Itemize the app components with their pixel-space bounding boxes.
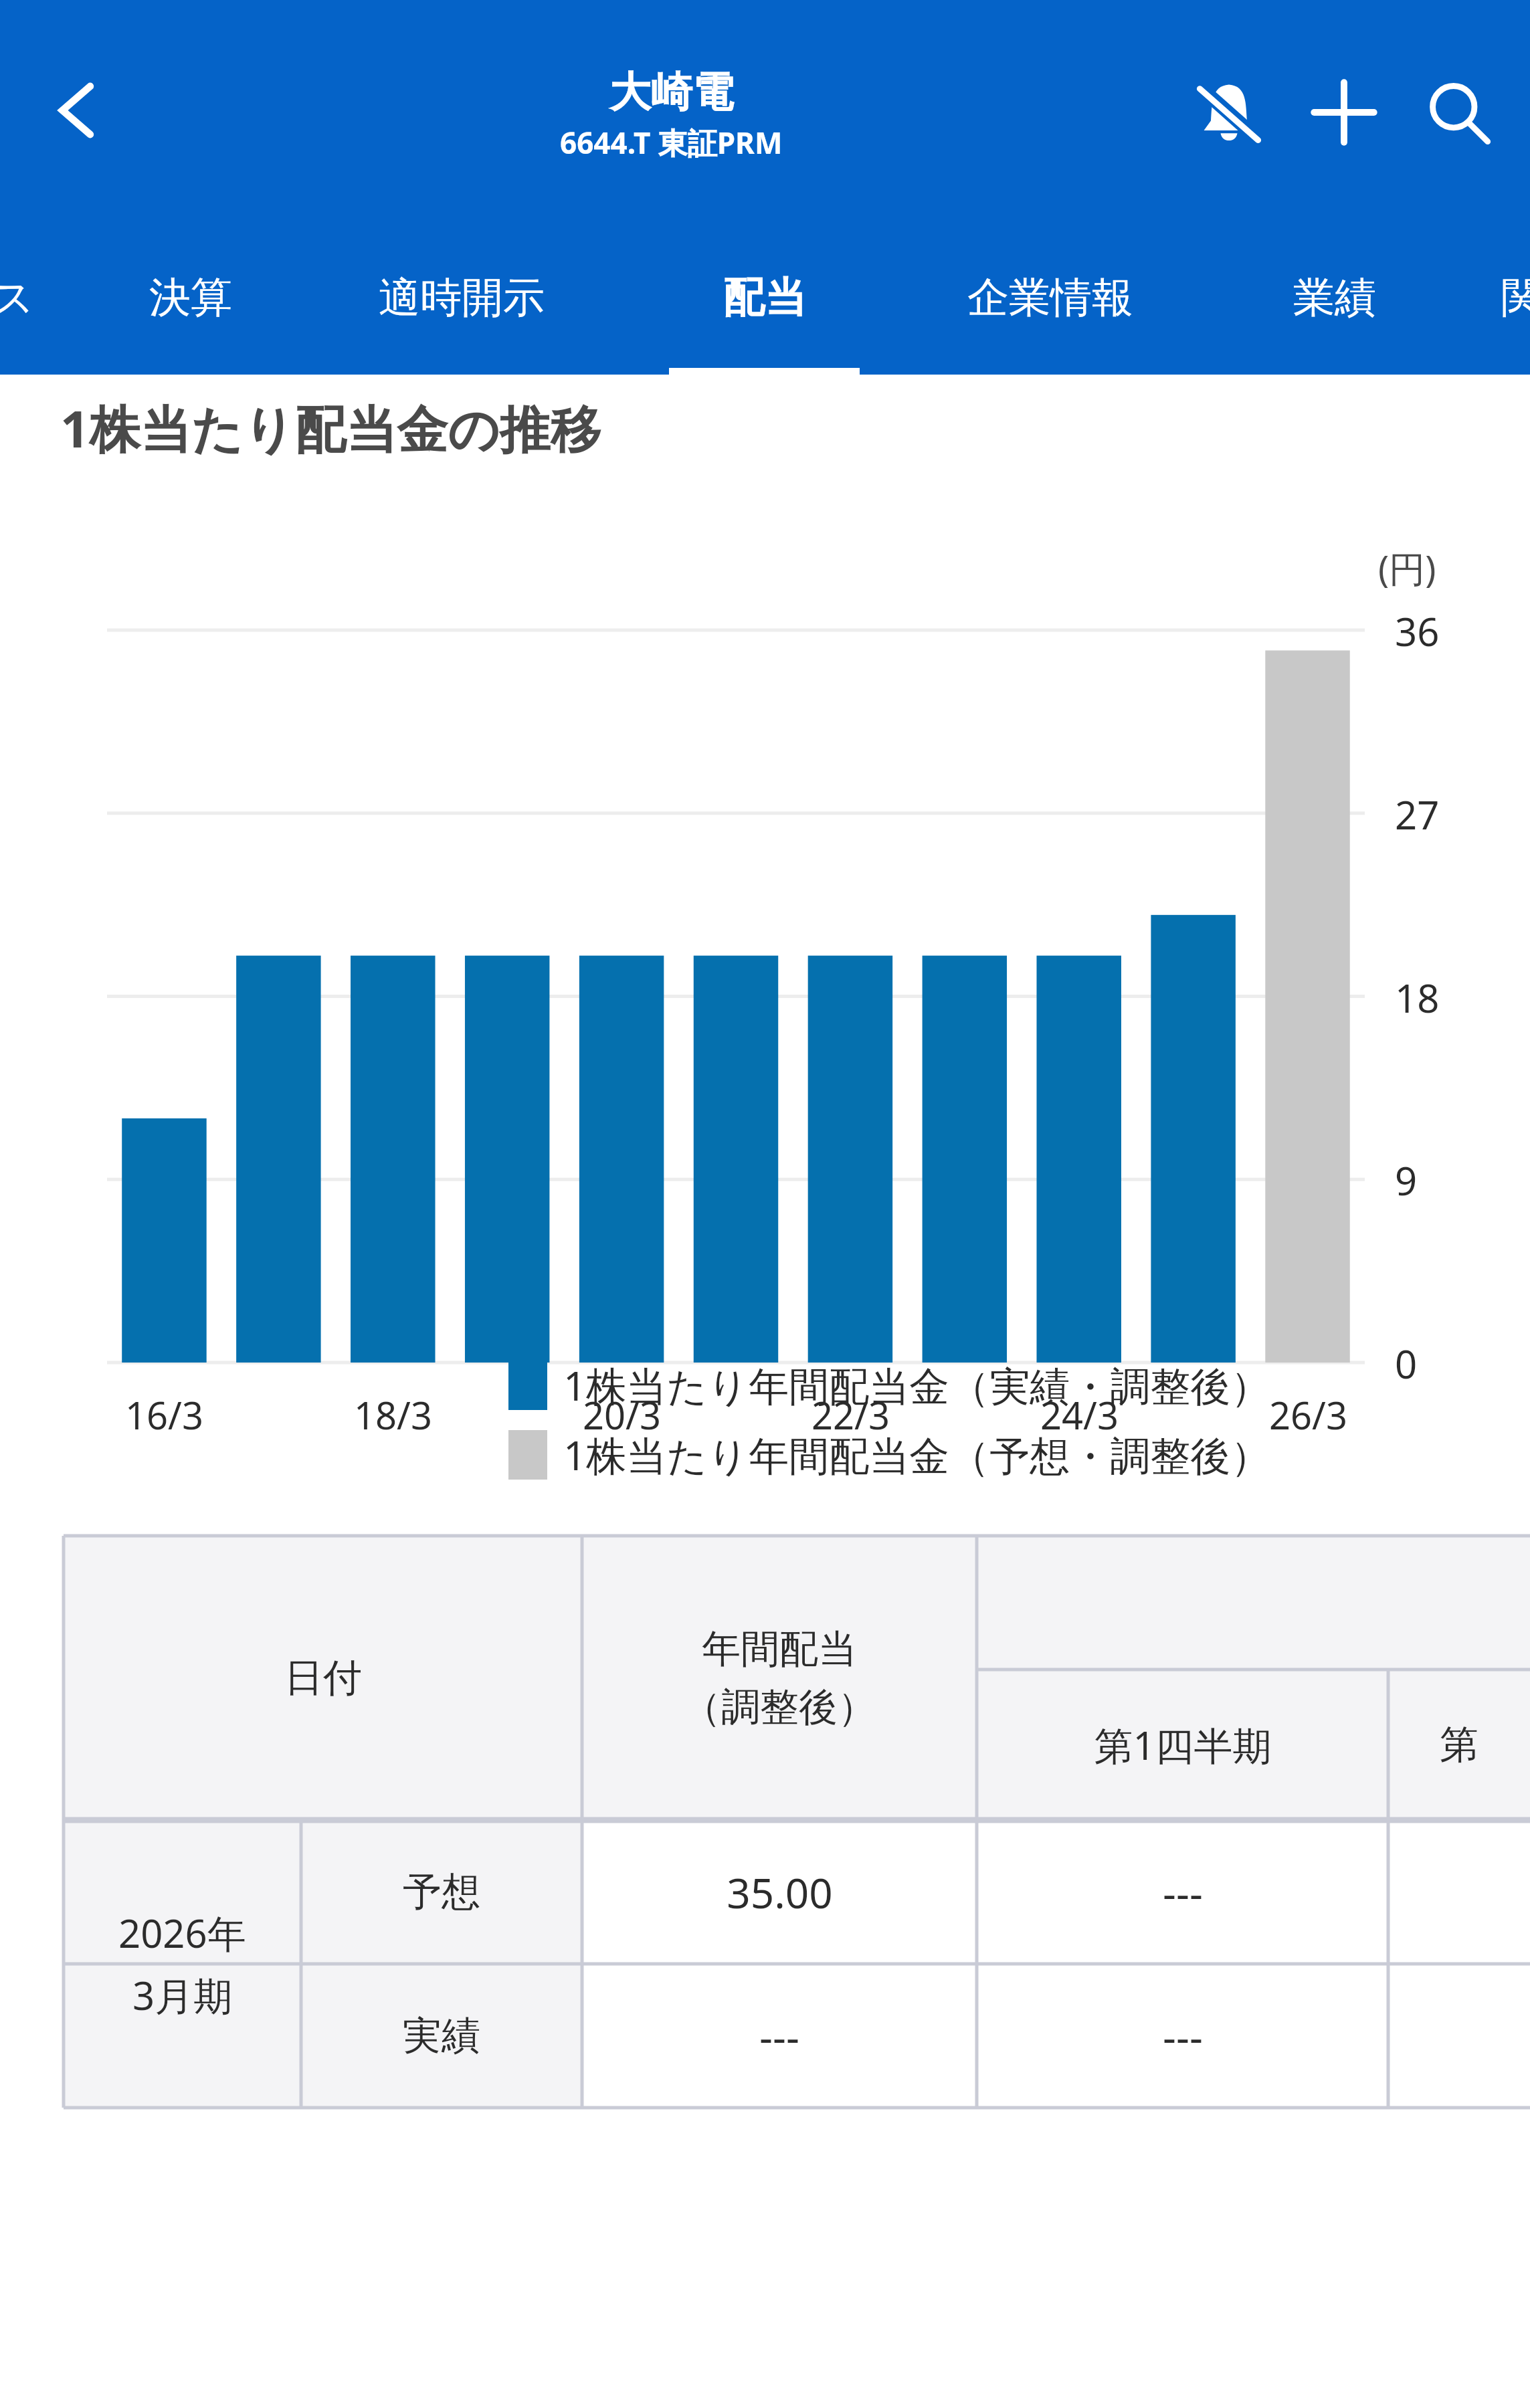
staticText: 実績 — [403, 2011, 480, 2060]
button[interactable]: 実績 — [301, 1964, 582, 2108]
staticText: 26/3 — [1269, 1389, 1347, 1440]
staticText: 20/3 — [583, 1389, 661, 1440]
staticText: (円) — [1378, 543, 1436, 593]
staticText: 適時開示 — [379, 272, 545, 324]
button[interactable]: 適時開示 — [328, 221, 595, 375]
staticText: 決算 — [149, 272, 232, 324]
button[interactable]: 年間配当 — [582, 1536, 977, 1820]
button[interactable]: 35.00 — [582, 1820, 977, 1964]
staticText: 配当 — [723, 272, 806, 324]
staticText: 35.00 — [727, 1864, 833, 1920]
staticText: 関 — [1501, 272, 1530, 324]
staticText: 第1四半期 — [1094, 1718, 1272, 1771]
staticText: 1株当たり年間配当金（実績・調整後） — [563, 1358, 1271, 1413]
button[interactable]: 関 — [1482, 221, 1530, 375]
button[interactable]: --- — [582, 1964, 977, 2108]
staticText: （調整後） — [682, 1683, 876, 1732]
staticText: --- — [1163, 1864, 1203, 1920]
staticText: 9 — [1395, 1154, 1418, 1207]
button[interactable]: 第 — [1388, 1670, 1530, 1820]
staticText: 24/3 — [1040, 1389, 1119, 1440]
button[interactable]: Notifications off — [1175, 59, 1282, 166]
staticText: 日付 — [284, 1653, 362, 1702]
button[interactable]: Add — [1290, 59, 1398, 166]
button[interactable]: 予想 — [301, 1820, 582, 1964]
button[interactable]: 業績 — [1258, 221, 1412, 375]
button[interactable]: ス — [0, 221, 54, 375]
staticText: 1株当たり年間配当金（予想・調整後） — [563, 1427, 1271, 1482]
button[interactable]: --- — [977, 1964, 1388, 2108]
staticText: 大崎電 — [609, 66, 734, 118]
button[interactable]: --- — [977, 1820, 1388, 1964]
staticText: 年間配当 — [702, 1625, 857, 1674]
staticText: 22/3 — [811, 1389, 890, 1440]
button[interactable]: Back — [20, 54, 134, 167]
staticText: 18/3 — [354, 1389, 432, 1440]
staticText: 企業情報 — [967, 272, 1133, 324]
button[interactable]: 第1四半期 — [977, 1670, 1388, 1820]
button[interactable]: 配当 — [669, 221, 860, 375]
staticText: 6644.T 東証PRM — [560, 122, 783, 163]
staticText: 1株当たり配当金の推移 — [60, 393, 601, 463]
staticText: 16/3 — [125, 1389, 203, 1440]
staticText: --- — [1163, 2008, 1203, 2064]
staticText: 2026年 — [118, 1906, 246, 1959]
staticText: 27 — [1395, 788, 1440, 841]
button[interactable]: 日付 — [64, 1536, 582, 1820]
staticText: ス — [0, 272, 35, 324]
staticText: 予想 — [403, 1868, 480, 1916]
staticText: 0 — [1395, 1337, 1418, 1390]
staticText: 業績 — [1293, 272, 1376, 324]
button[interactable]: 企業情報 — [917, 221, 1184, 375]
button[interactable]: 決算 — [114, 221, 268, 375]
staticText: 36 — [1395, 605, 1440, 658]
staticText: 3月期 — [132, 1969, 233, 2021]
button[interactable]: Search — [1404, 59, 1511, 166]
staticText: 第 — [1440, 1720, 1478, 1769]
staticText: 18 — [1395, 971, 1440, 1024]
button[interactable]: 2026年 — [64, 1820, 301, 2108]
staticText: --- — [759, 2008, 799, 2064]
